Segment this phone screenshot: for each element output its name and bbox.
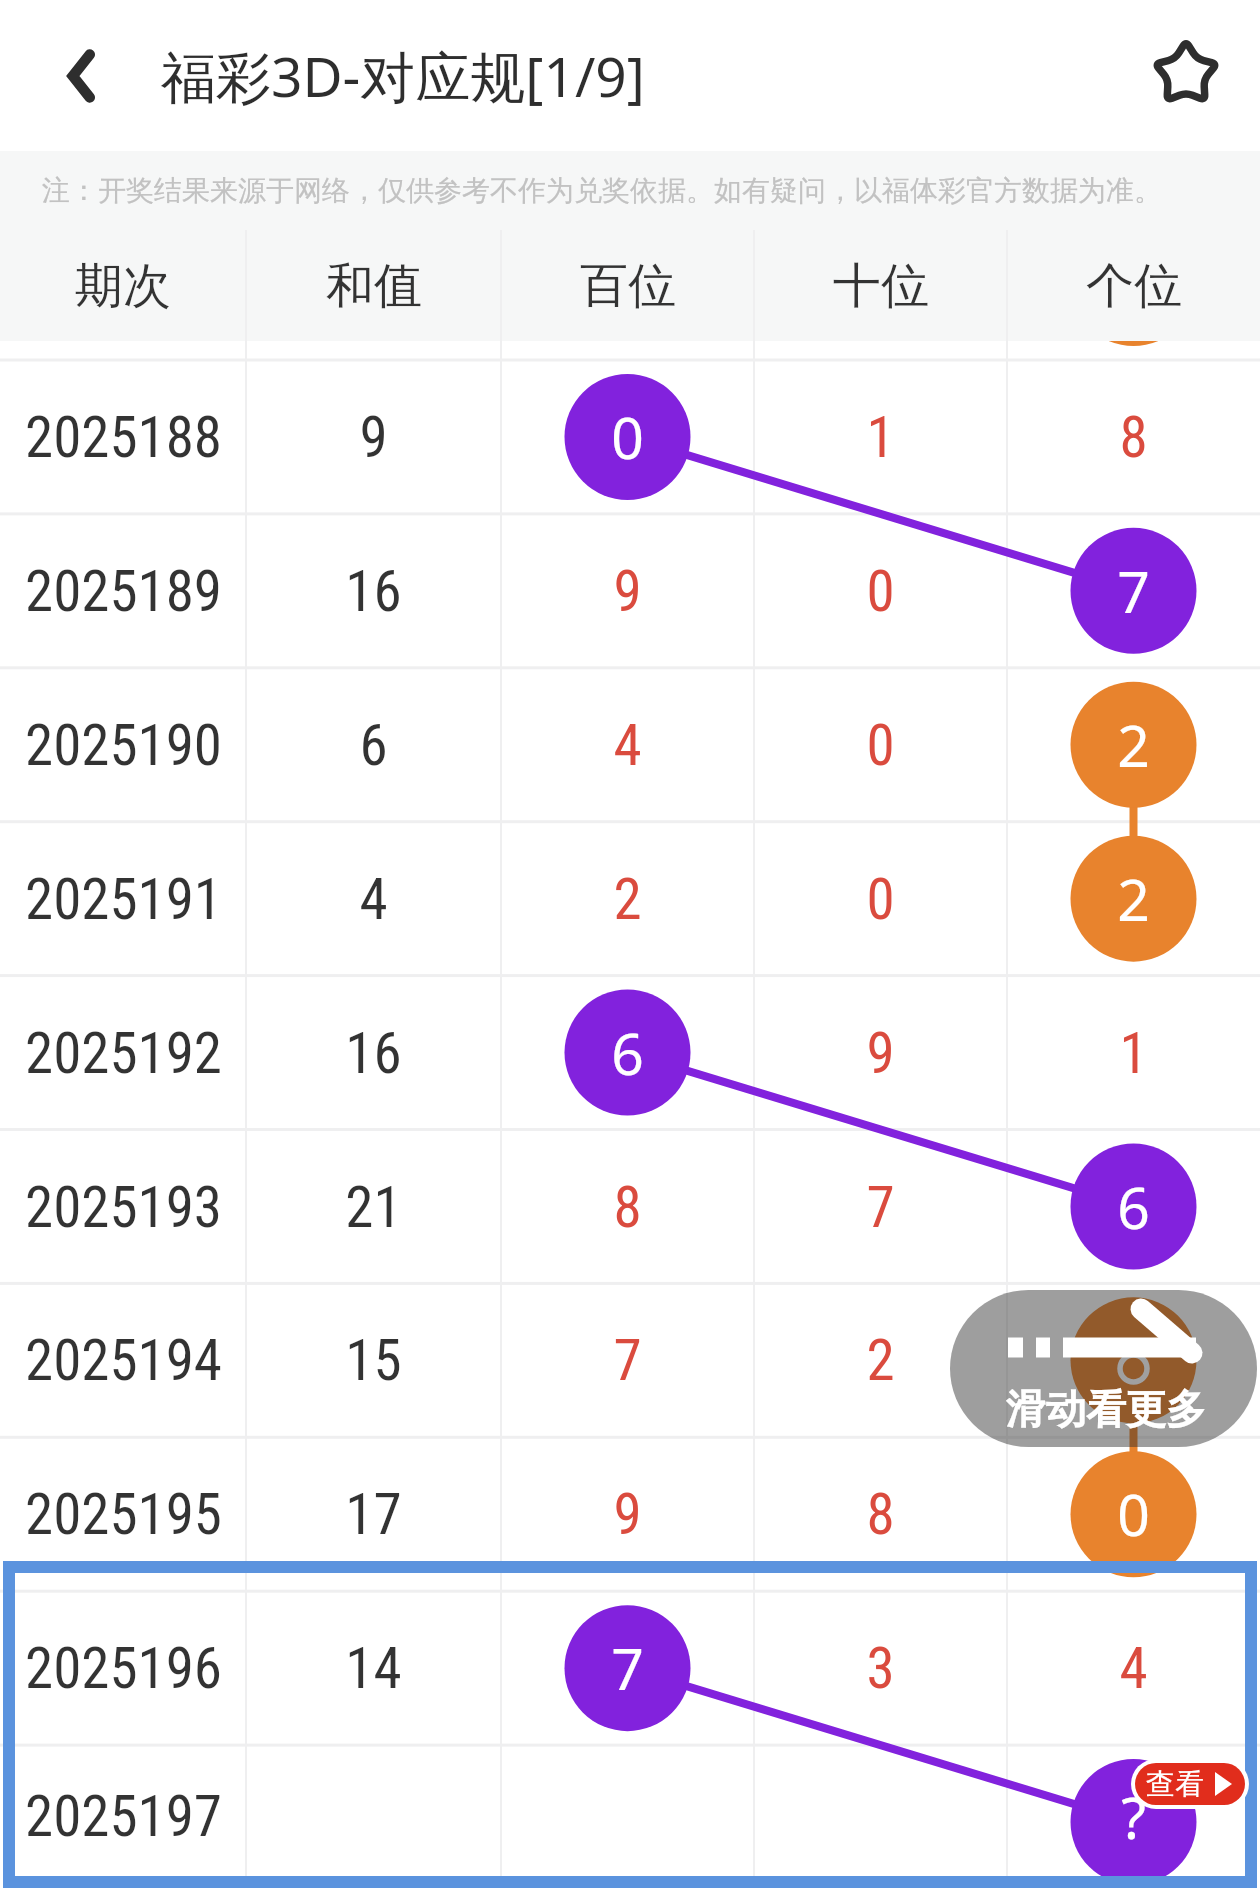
staticText: 2025195 <box>25 1481 222 1548</box>
staticText: 4 <box>1119 1635 1148 1702</box>
button[interactable]: 2025196 <box>0 1591 1260 1745</box>
staticText: 福彩3D-对应规[1/9] <box>161 38 645 113</box>
button[interactable]: 查看 <box>1135 1763 1245 1805</box>
staticText: 百位 <box>580 256 676 316</box>
button[interactable]: Back <box>22 29 116 123</box>
button[interactable] <box>3 1561 1257 1888</box>
staticText: 16 <box>345 558 402 625</box>
staticText: 2 <box>613 866 642 933</box>
button[interactable]: 2025188 <box>0 360 1260 514</box>
staticText: 16 <box>345 1020 402 1087</box>
staticText: 个位 <box>1086 256 1182 316</box>
staticText: 2025190 <box>25 712 222 779</box>
staticText: 3 <box>866 1635 895 1702</box>
staticText: 6 <box>359 712 388 779</box>
staticText: 2 <box>866 1327 895 1394</box>
staticText: 7 <box>866 1174 895 1241</box>
staticText: 0 <box>611 398 644 476</box>
staticText: 2025196 <box>25 1635 222 1702</box>
staticText: 2025194 <box>25 1327 222 1394</box>
button[interactable]: Swipe for more <box>950 1290 1257 1447</box>
staticText: 2025192 <box>25 1020 222 1087</box>
staticText: 17 <box>345 1481 402 1548</box>
staticText: 期次 <box>75 256 171 316</box>
staticText: 7 <box>613 1327 642 1394</box>
staticText: 查看 <box>1146 1766 1204 1803</box>
staticText: 4 <box>613 712 642 779</box>
staticText: 2025189 <box>25 558 222 625</box>
button[interactable]: 2025192 <box>0 976 1260 1130</box>
button[interactable]: 2025197 <box>0 1745 1260 1888</box>
staticText: 0 <box>866 558 895 625</box>
staticText: 2 <box>1117 706 1150 784</box>
staticText: 0 <box>1117 1475 1150 1553</box>
staticText: ? <box>1121 1778 1146 1856</box>
staticText: 0 <box>866 712 895 779</box>
staticText: 8 <box>613 1174 642 1241</box>
staticText: 2025191 <box>25 866 222 933</box>
staticText: 和值 <box>326 256 422 316</box>
staticText: 15 <box>345 1327 402 1394</box>
staticText: 0 <box>866 866 895 933</box>
staticText: 4 <box>359 866 388 933</box>
staticText: 8 <box>866 1481 895 1548</box>
staticText: 6 <box>611 1014 644 1092</box>
staticText: 7 <box>1117 552 1150 630</box>
button[interactable]: 2025195 <box>0 1437 1260 1591</box>
button[interactable]: 2025190 <box>0 668 1260 822</box>
staticText: 1 <box>866 404 895 471</box>
staticText: 2 <box>1117 860 1150 938</box>
staticText: 9 <box>866 1020 895 1087</box>
button[interactable]: Favorite <box>1138 24 1234 120</box>
button[interactable]: 2025193 <box>0 1130 1260 1284</box>
staticText: 2025193 <box>25 1174 222 1241</box>
staticText: 滑动看更多 <box>1006 1384 1206 1434</box>
staticText: 7 <box>611 1629 644 1707</box>
staticText: 注：开奖结果来源于网络，仅供参考不作为兑奖依据。如有疑问，以福体彩官方数据为准。 <box>42 173 1162 208</box>
staticText: 9 <box>613 1481 642 1548</box>
staticText: 21 <box>345 1174 402 1241</box>
staticText: 9 <box>613 558 642 625</box>
button[interactable]: 2025189 <box>0 514 1260 668</box>
staticText: 9 <box>359 404 388 471</box>
staticText: 2025188 <box>25 404 222 471</box>
staticText: 1 <box>1119 1020 1148 1087</box>
staticText: 十位 <box>833 256 929 316</box>
staticText: 8 <box>1119 404 1148 471</box>
staticText: 6 <box>1117 1168 1150 1246</box>
staticText: 2025197 <box>25 1783 222 1850</box>
button[interactable]: 2025194 <box>0 1283 1260 1437</box>
button[interactable]: 2025191 <box>0 822 1260 976</box>
staticText: 14 <box>345 1635 402 1702</box>
